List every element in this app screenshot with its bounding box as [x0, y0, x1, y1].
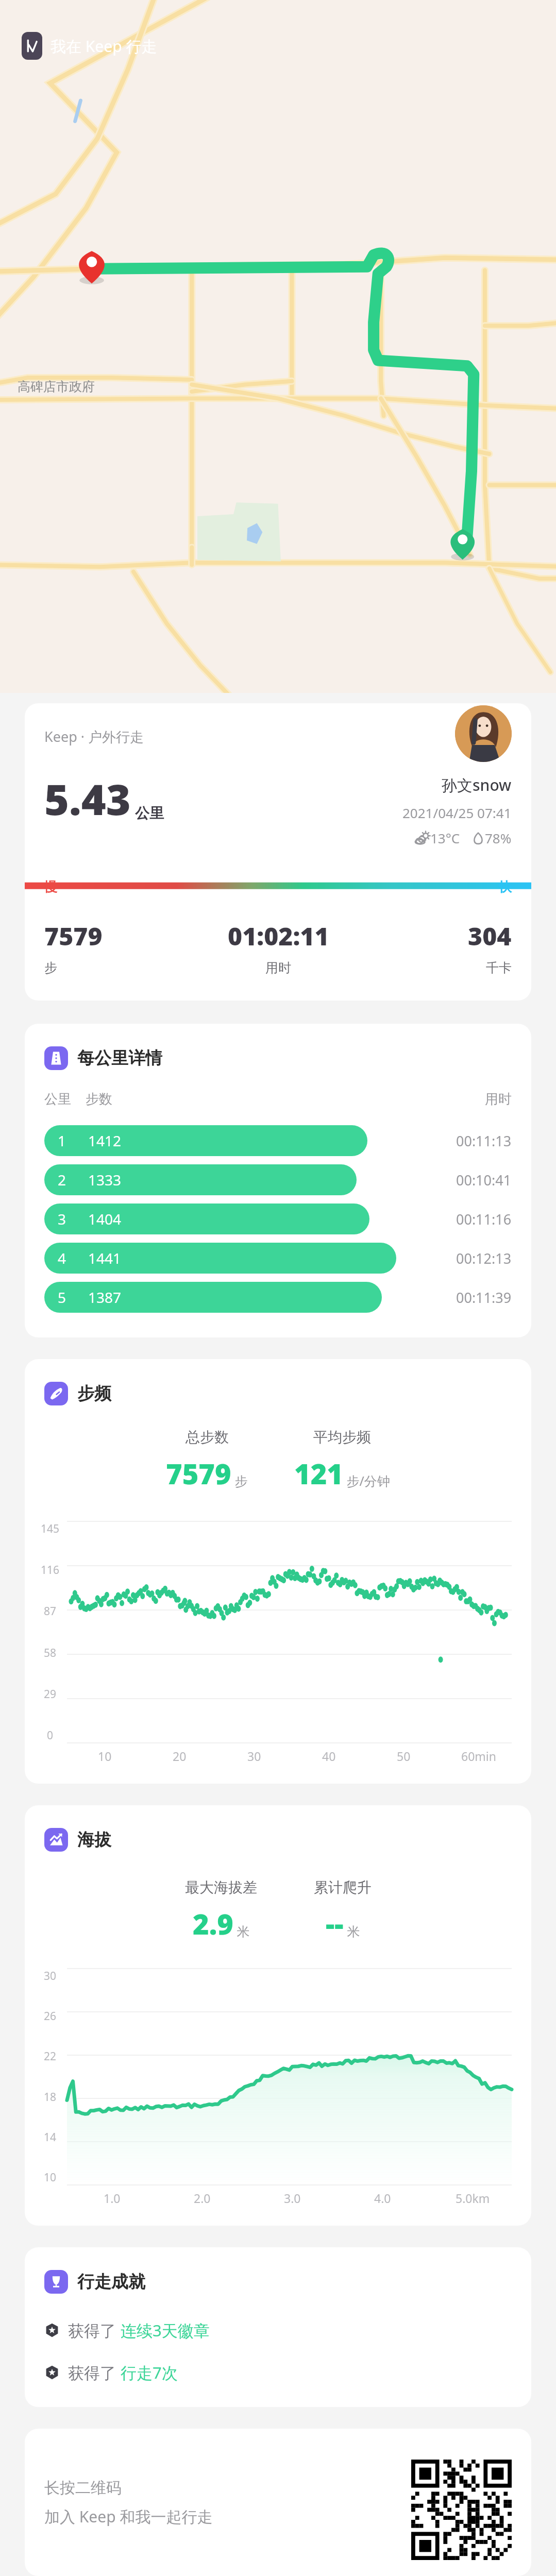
button[interactable]: 每公里详情: [44, 1046, 531, 1070]
staticText: 海拔: [77, 1829, 111, 1851]
staticText: 10: [98, 1748, 112, 1764]
staticText: 米: [233, 1922, 250, 1940]
staticText: 0: [47, 1728, 54, 1743]
staticText: 高碑店市政府: [18, 379, 95, 395]
button[interactable]: 2: [44, 1164, 512, 1195]
staticText: 00:12:13: [456, 1249, 512, 1268]
staticText: 公里: [44, 1091, 71, 1108]
staticText: 千卡: [486, 960, 512, 976]
staticText: 获得了: [68, 2362, 121, 2383]
staticText: 1404: [88, 1209, 122, 1229]
staticText: 58: [44, 1646, 57, 1660]
staticText: 2021/04/25 07:41: [402, 804, 512, 822]
staticText: 4: [58, 1248, 66, 1268]
staticText: 18: [44, 2090, 57, 2105]
staticText: 我在 Keep 行走: [50, 36, 157, 57]
staticText: 1333: [88, 1170, 122, 1190]
staticText: 累计爬升: [314, 1878, 372, 1896]
staticText: 13°C: [430, 829, 460, 847]
staticText: 5.43: [44, 770, 131, 827]
staticText: 长按二维码: [44, 2478, 122, 2498]
staticText: 连续3天徽章: [121, 2319, 210, 2341]
staticText: 29: [44, 1687, 57, 1702]
staticText: 40: [322, 1748, 336, 1764]
staticText: 1412: [88, 1131, 122, 1150]
button[interactable]: 5: [44, 1282, 512, 1313]
button[interactable]: QR code: [411, 2460, 512, 2545]
staticText: 7579: [166, 1454, 231, 1493]
staticText: 20: [173, 1748, 187, 1764]
staticText: 60min: [461, 1748, 496, 1764]
staticText: 22: [44, 2049, 57, 2064]
staticText: 5.0km: [456, 2190, 490, 2206]
staticText: 3.0: [284, 2190, 301, 2206]
staticText: 最大海拔差: [185, 1878, 257, 1896]
staticText: 总步数: [186, 1428, 229, 1446]
staticText: 4.0: [374, 2190, 391, 2206]
staticText: 3: [58, 1209, 66, 1229]
button[interactable]: 步频: [44, 1382, 531, 1405]
staticText: 步: [231, 1472, 248, 1489]
staticText: 步频: [77, 1383, 111, 1404]
staticText: 每公里详情: [77, 1047, 162, 1069]
staticText: 慢: [44, 879, 57, 895]
staticText: 用时: [485, 1091, 512, 1108]
staticText: 00:11:39: [456, 1288, 512, 1307]
staticText: 116: [41, 1563, 60, 1578]
button[interactable]: 行走成就: [44, 2270, 531, 2294]
staticText: 步: [44, 960, 57, 976]
staticText: 7579: [44, 919, 103, 953]
staticText: Keep · 户外行走: [44, 727, 144, 746]
staticText: 00:10:41: [456, 1171, 512, 1190]
staticText: 121: [294, 1454, 343, 1493]
staticText: --: [326, 1905, 344, 1943]
staticText: 步/分钟: [343, 1472, 390, 1489]
button[interactable]: 获得了: [44, 2362, 512, 2383]
button[interactable]: Keep: [22, 32, 157, 60]
staticText: 1.0: [104, 2190, 121, 2206]
staticText: 26: [44, 2009, 57, 2024]
staticText: 米: [344, 1922, 360, 1940]
button[interactable]: 1: [44, 1125, 512, 1156]
staticText: 145: [41, 1521, 60, 1536]
staticText: 01:02:11: [228, 919, 329, 953]
staticText: 2.0: [194, 2190, 211, 2206]
staticText: 304: [468, 919, 512, 953]
staticText: 2: [58, 1170, 66, 1190]
button[interactable]: 3: [44, 1204, 512, 1234]
button[interactable]: 获得了: [44, 2319, 512, 2341]
staticText: 10: [44, 2170, 57, 2185]
staticText: 2.9: [193, 1905, 233, 1943]
staticText: 30: [44, 1969, 57, 1984]
staticText: 87: [44, 1604, 57, 1619]
staticText: 50: [397, 1748, 411, 1764]
staticText: 获得了: [68, 2319, 121, 2341]
staticText: 行走7次: [121, 2362, 178, 2383]
staticText: 1387: [88, 1287, 122, 1307]
staticText: 平均步频: [313, 1428, 371, 1446]
staticText: 快: [499, 879, 512, 895]
button[interactable]: User avatar: [455, 705, 512, 762]
staticText: 14: [44, 2130, 57, 2145]
staticText: 用时: [265, 960, 291, 976]
staticText: 步数: [86, 1091, 112, 1108]
button[interactable]: 海拔: [44, 1828, 531, 1852]
staticText: 30: [247, 1748, 261, 1764]
staticText: 行走成就: [77, 2271, 145, 2293]
staticText: 1: [58, 1131, 66, 1150]
staticText: 78%: [485, 829, 512, 847]
staticText: 加入 Keep 和我一起行走: [44, 2506, 213, 2527]
staticText: 公里: [135, 804, 164, 822]
staticText: 00:11:16: [456, 1210, 512, 1229]
staticText: 00:11:13: [456, 1131, 512, 1150]
button[interactable]: 4: [44, 1243, 512, 1274]
staticText: 1441: [88, 1248, 122, 1268]
staticText: 孙文snow: [442, 774, 512, 795]
staticText: 5: [58, 1287, 66, 1307]
